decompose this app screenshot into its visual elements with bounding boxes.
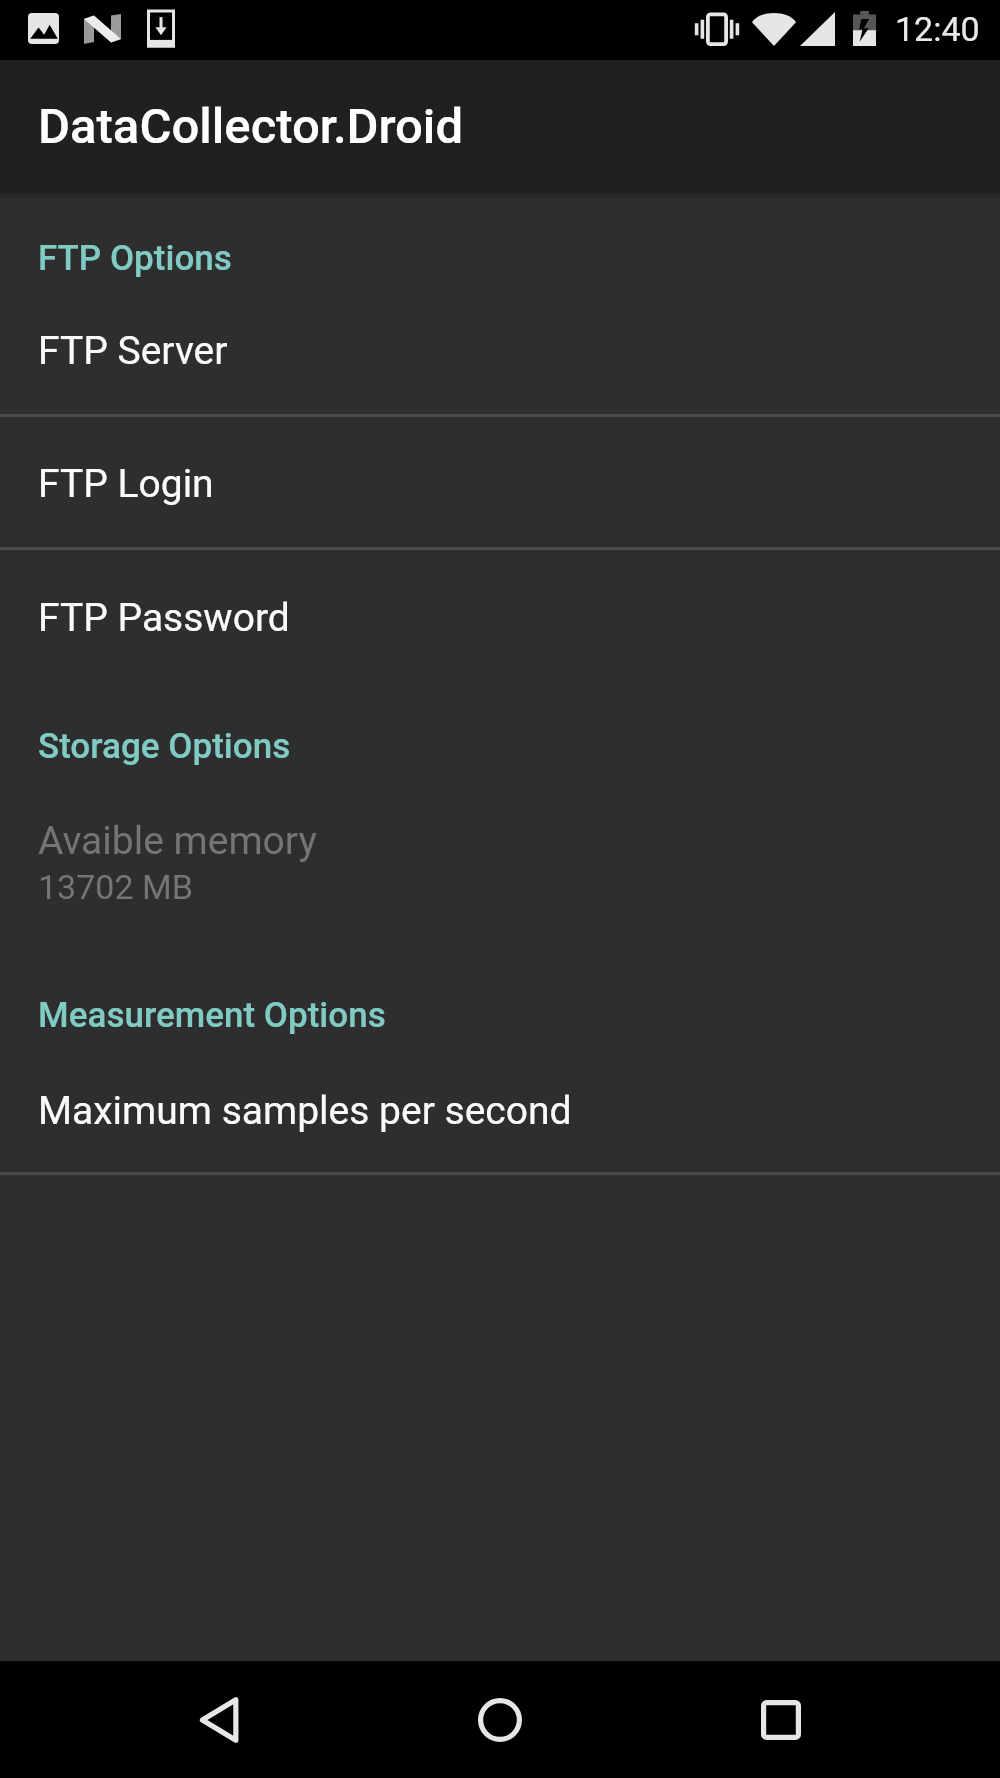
staticText: Measurement Options: [38, 995, 386, 1036]
staticText: FTP Password: [38, 595, 290, 641]
staticText: FTP Server: [38, 328, 228, 374]
staticText: 13702 MB: [38, 867, 193, 907]
button[interactable]: Avaible memory: [0, 767, 1000, 907]
staticText: FTP Options: [38, 238, 232, 279]
button[interactable]: FTP Login: [0, 417, 1000, 547]
staticText: Storage Options: [38, 726, 291, 767]
staticText: Maximum samples per second: [38, 1088, 572, 1134]
button[interactable]: FTP Password: [0, 550, 1000, 641]
staticText: FTP Login: [38, 461, 214, 507]
staticText: Avaible memory: [38, 818, 317, 864]
staticText: DataCollector.Droid: [38, 98, 464, 155]
button[interactable]: Home: [458, 1678, 542, 1762]
staticText: 12:40: [895, 9, 980, 49]
button[interactable]: Maximum samples per second: [0, 1036, 1000, 1172]
button[interactable]: FTP Server: [0, 279, 1000, 414]
button[interactable]: Back: [178, 1678, 262, 1762]
button[interactable]: Recents: [739, 1678, 823, 1762]
